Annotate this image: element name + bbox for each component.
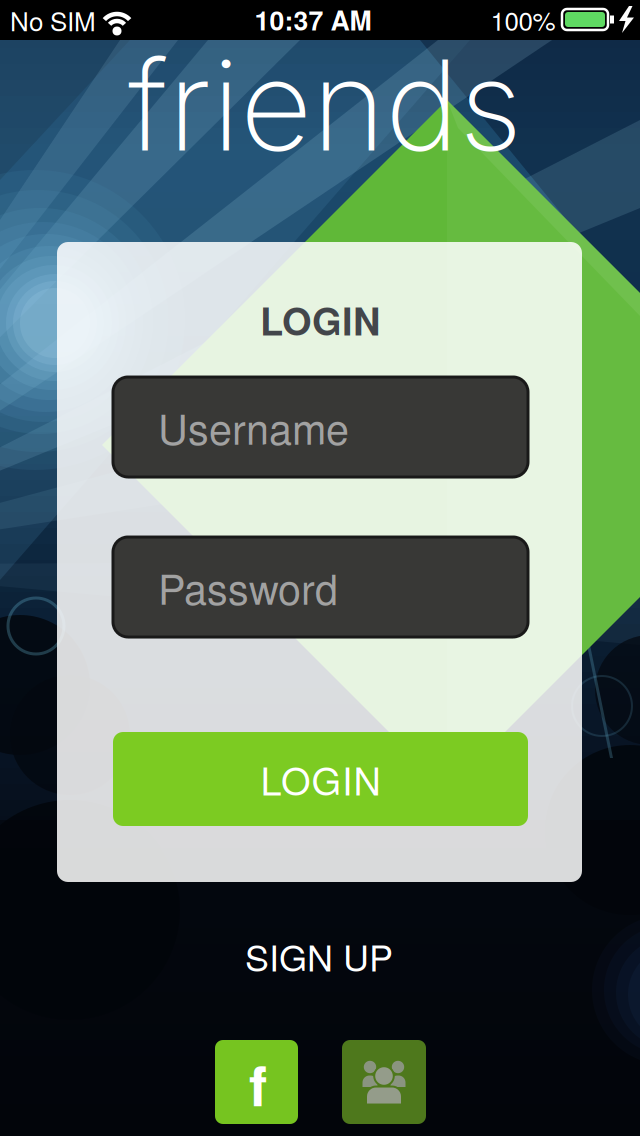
staticText: SIGN UP [245, 930, 393, 982]
staticText: No SIM [10, 1, 96, 39]
staticText: Password [158, 557, 338, 617]
button[interactable]: LOGIN [113, 732, 528, 826]
staticText: Username [158, 397, 349, 457]
button[interactable]: Log in with Friends [342, 1040, 426, 1124]
staticText: 100% [490, 1, 555, 38]
staticText: LOGIN [260, 752, 380, 806]
button[interactable]: Username [113, 377, 528, 477]
staticText: 10:37 AM [254, 0, 371, 39]
staticText: friends [128, 29, 522, 181]
button[interactable]: SIGN UP [159, 928, 479, 984]
staticText: f [249, 1045, 267, 1123]
button[interactable]: Log in with Facebook [215, 1040, 298, 1124]
button[interactable]: Password [113, 537, 528, 637]
staticText: LOGIN [260, 293, 380, 347]
